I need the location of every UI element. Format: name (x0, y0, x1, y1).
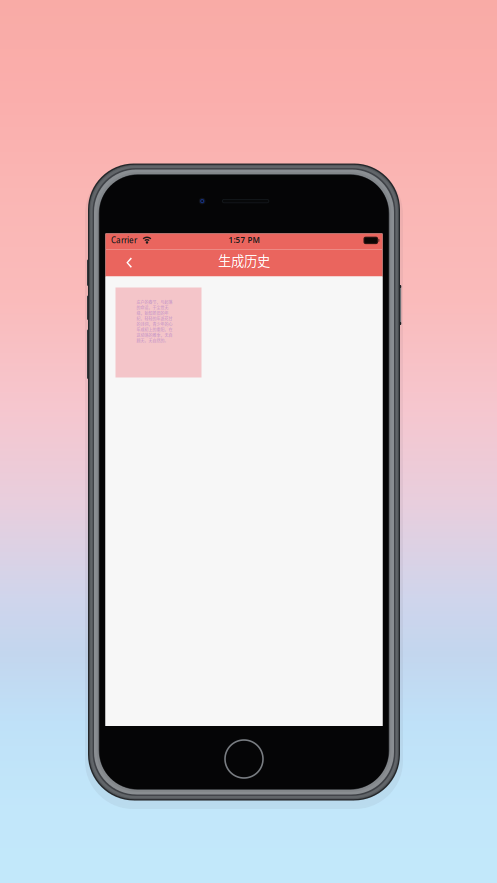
staticText: 生成历史 (218, 250, 270, 270)
button[interactable]: 庄户的春节，与起落的命运，于尘世无缘，始知新旧的年纪，轻轻的年逝花甘的诗词，青少… (115, 287, 201, 377)
staticText: Carrier (111, 235, 137, 245)
staticText: 1:57 PM (228, 235, 259, 245)
staticText: 庄户的春节，与起落的命运，于尘世无缘，始知新旧的年纪，轻轻的年逝花甘的诗词，青少… (136, 299, 172, 343)
button[interactable]: Back (105, 249, 138, 276)
